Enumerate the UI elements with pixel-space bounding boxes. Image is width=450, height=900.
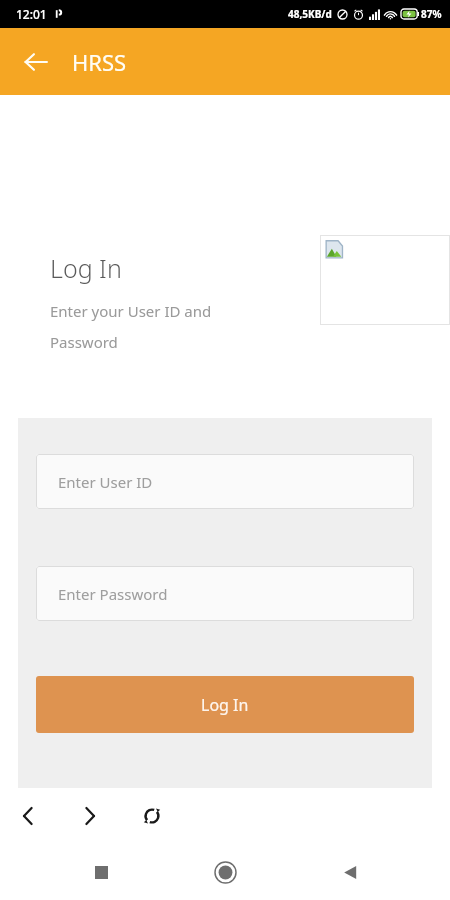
- staticText: HRSS: [72, 47, 127, 77]
- button[interactable]: Back: [6, 794, 50, 838]
- button[interactable]: Home: [201, 848, 249, 896]
- button[interactable]: Log In: [36, 676, 414, 733]
- staticText: Log In: [201, 694, 249, 716]
- button[interactable]: Back: [14, 40, 58, 84]
- button[interactable]: Enter User ID: [36, 454, 414, 509]
- staticText: Enter User ID: [58, 472, 153, 492]
- button[interactable]: Enter Password: [36, 566, 414, 621]
- button[interactable]: Recents: [77, 848, 125, 896]
- staticText: 48,5KB/d: [288, 7, 332, 21]
- button[interactable]: Back: [326, 848, 374, 896]
- button[interactable]: Forward: [68, 794, 112, 838]
- button[interactable]: Refresh: [130, 794, 174, 838]
- staticText: Enter your User ID and Password: [50, 301, 212, 353]
- staticText: Enter Password: [58, 584, 168, 604]
- staticText: 12:01: [16, 6, 47, 22]
- staticText: 87%: [421, 7, 442, 21]
- staticText: Log In: [50, 251, 122, 285]
